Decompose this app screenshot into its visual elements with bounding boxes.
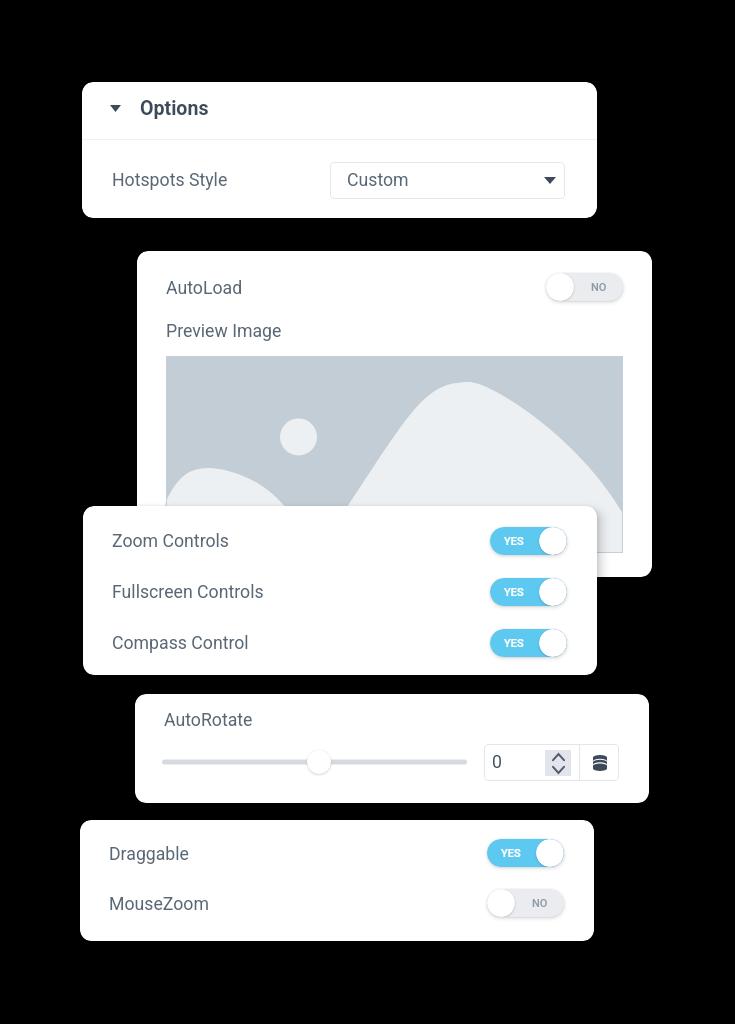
- button[interactable]: Enabled: [490, 578, 567, 606]
- button[interactable]: Enabled: [490, 527, 567, 555]
- button[interactable]: AutoLoad: [137, 255, 652, 319]
- staticText: 0: [492, 752, 502, 773]
- staticText: NO: [591, 281, 607, 294]
- button[interactable]: Draggable: [80, 828, 594, 878]
- button[interactable]: MouseZoom: [80, 878, 594, 928]
- staticText: Fullscreen Controls: [112, 582, 264, 603]
- button[interactable]: Custom: [330, 162, 565, 199]
- button[interactable]: Data source: [580, 744, 619, 781]
- button[interactable]: Enabled: [490, 629, 567, 657]
- button[interactable]: Zoom Controls: [83, 515, 597, 566]
- staticText: AutoRotate: [164, 710, 253, 731]
- staticText: Zoom Controls: [112, 531, 229, 552]
- staticText: Preview Image: [166, 321, 282, 342]
- button[interactable]: Enabled: [487, 839, 564, 867]
- staticText: YES: [504, 637, 524, 650]
- button[interactable]: Fullscreen Controls: [83, 566, 597, 617]
- staticText: Compass Control: [112, 633, 249, 654]
- staticText: Options: [140, 97, 209, 120]
- button[interactable]: Disabled: [487, 889, 564, 917]
- staticText: Custom: [347, 170, 409, 191]
- staticText: YES: [501, 847, 521, 860]
- staticText: NO: [532, 897, 548, 910]
- staticText: Draggable: [109, 844, 189, 865]
- button[interactable]: Options: [82, 82, 597, 135]
- button[interactable]: AutoRotate speed: [151, 743, 478, 781]
- button[interactable]: Disabled: [546, 273, 623, 301]
- staticText: MouseZoom: [109, 894, 209, 915]
- button[interactable]: Rotation value: [484, 744, 579, 781]
- staticText: YES: [504, 586, 524, 599]
- staticText: Hotspots Style: [112, 170, 228, 191]
- staticText: AutoLoad: [166, 278, 243, 299]
- staticText: YES: [504, 535, 524, 548]
- button[interactable]: Compass Control: [83, 617, 597, 668]
